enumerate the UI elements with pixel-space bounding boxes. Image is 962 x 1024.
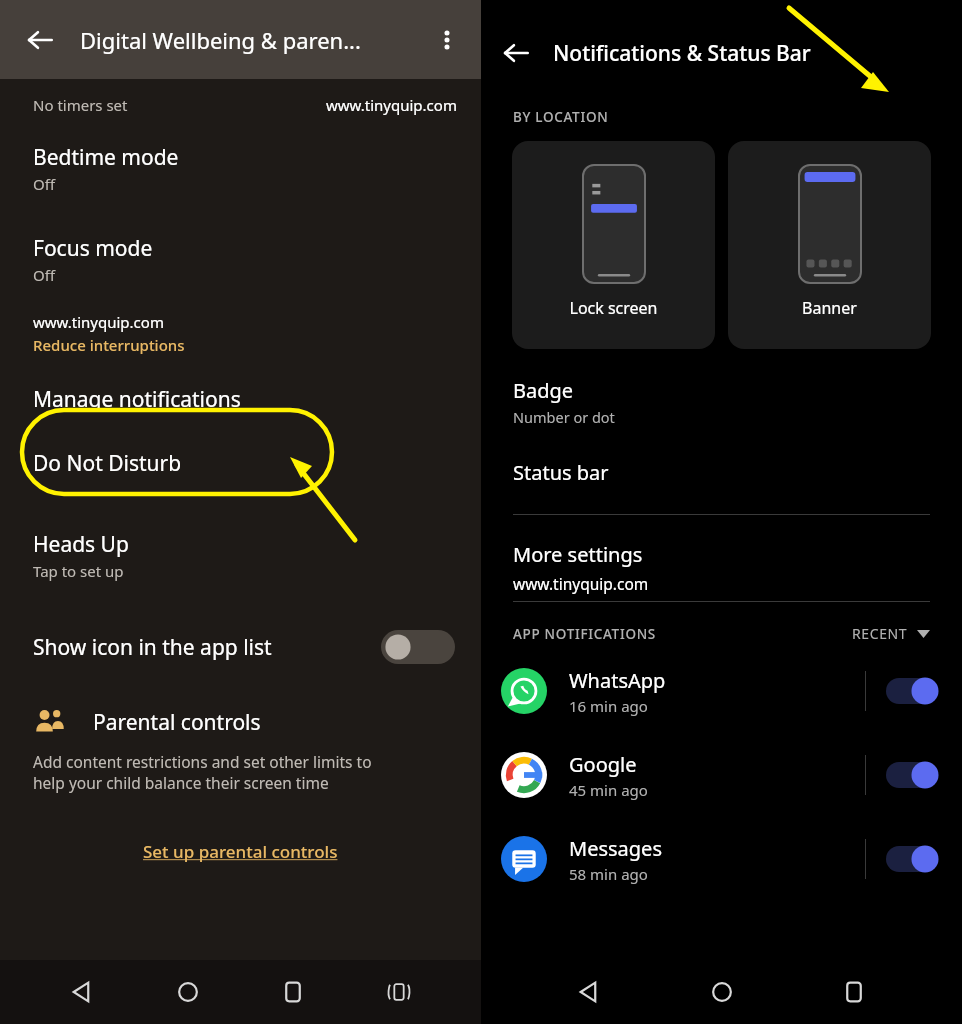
- staticText: Lock screen: [569, 297, 658, 319]
- button[interactable]: Focus mode: [0, 232, 481, 287]
- button[interactable]: Heads Up: [0, 528, 481, 583]
- button[interactable]: Back: [58, 968, 106, 1016]
- button[interactable]: More settings: [481, 541, 962, 594]
- button[interactable]: Recents: [269, 968, 317, 1016]
- staticText: BY LOCATION: [513, 108, 609, 126]
- button[interactable]: Set up parental controls: [135, 836, 346, 867]
- staticText: Bedtime mode: [33, 143, 179, 172]
- staticText: www.tinyquip.com: [513, 573, 649, 594]
- button[interactable]: Bedtime mode: [0, 141, 481, 196]
- staticText: Manage notifications: [33, 385, 241, 414]
- staticText: RECENT: [852, 624, 908, 643]
- button[interactable]: Do Not Disturb: [0, 443, 481, 483]
- button[interactable]: Toggle WhatsApp notifications: [886, 678, 938, 704]
- staticText: Heads Up: [33, 530, 129, 559]
- staticText: 45 min ago: [569, 780, 648, 800]
- button[interactable]: Recents: [830, 968, 878, 1016]
- staticText: Digital Wellbeing & paren...: [80, 25, 427, 55]
- button[interactable]: Back: [565, 968, 613, 1016]
- staticText: Banner: [802, 297, 857, 319]
- staticText: Off: [33, 265, 56, 285]
- button[interactable]: Show icon in the app list: [0, 621, 481, 673]
- staticText: 16 min ago: [569, 696, 648, 716]
- staticText: Tap to set up: [33, 561, 124, 581]
- staticText: Parental controls: [93, 708, 261, 737]
- staticText: 58 min ago: [569, 864, 648, 884]
- button[interactable]: Badge: [481, 377, 962, 427]
- staticText: Focus mode: [33, 234, 153, 263]
- staticText: Notifications & Status Bar: [553, 39, 811, 68]
- button[interactable]: Banner: [728, 141, 931, 349]
- button[interactable]: RECENT: [848, 620, 934, 647]
- staticText: Number or dot: [513, 407, 615, 427]
- button[interactable]: Lock screen: [512, 141, 715, 349]
- staticText: Messages: [569, 835, 662, 862]
- button[interactable]: Back: [495, 32, 537, 74]
- staticText: Off: [33, 174, 56, 194]
- staticText: www.tinyquip.com: [326, 95, 457, 115]
- staticText: Show icon in the app list: [33, 633, 381, 662]
- staticText: Add content restrictions and set other l…: [33, 751, 372, 794]
- button[interactable]: Toggle Google notifications: [886, 762, 938, 788]
- button[interactable]: Home: [698, 968, 746, 1016]
- button[interactable]: Toggle Messages notifications: [886, 846, 938, 872]
- button[interactable]: Rotate: [375, 968, 423, 1016]
- button[interactable]: Parental controls: [0, 699, 481, 745]
- button[interactable]: Messages: [481, 827, 962, 891]
- staticText: Badge: [513, 377, 574, 404]
- button[interactable]: Manage notifications: [0, 377, 481, 421]
- button[interactable]: WhatsApp: [481, 659, 962, 723]
- button[interactable]: Google: [481, 743, 962, 807]
- button[interactable]: More options: [427, 20, 467, 60]
- staticText: WhatsApp: [569, 667, 666, 694]
- staticText: Do Not Disturb: [33, 449, 182, 478]
- button[interactable]: Status bar: [481, 456, 962, 488]
- staticText: APP NOTIFICATIONS: [513, 625, 848, 643]
- button[interactable]: Home: [164, 968, 212, 1016]
- staticText: Reduce interruptions: [33, 335, 185, 355]
- staticText: Set up parental controls: [143, 840, 338, 863]
- button[interactable]: Back: [18, 18, 62, 62]
- staticText: More settings: [513, 541, 643, 568]
- staticText: Google: [569, 751, 637, 778]
- staticText: www.tinyquip.com: [33, 312, 164, 332]
- staticText: No timers set: [33, 95, 128, 115]
- staticText: Status bar: [513, 459, 609, 486]
